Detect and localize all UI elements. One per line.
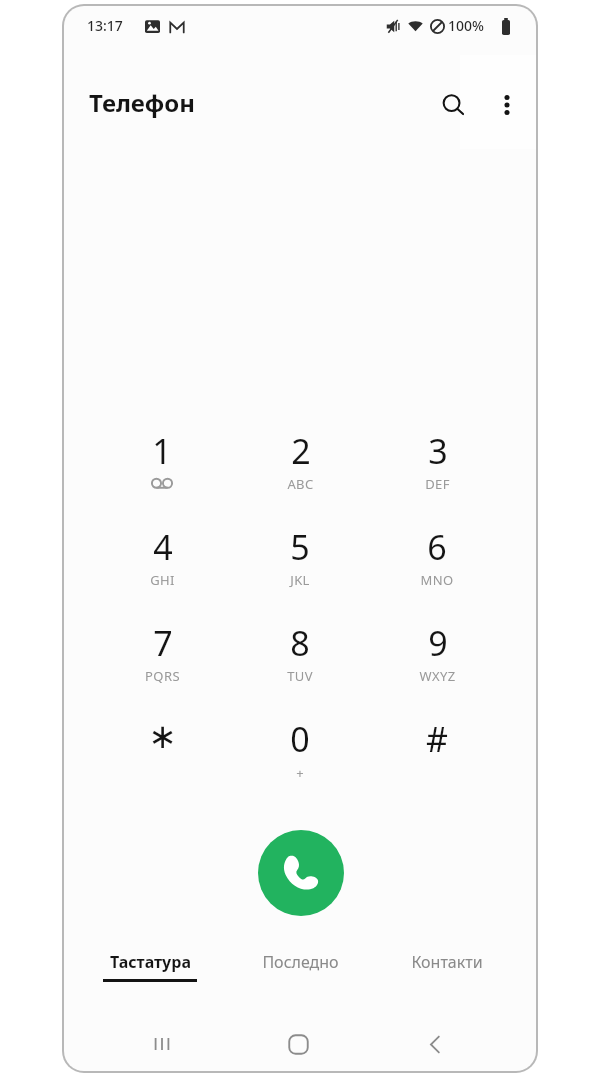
- staticText: #: [426, 716, 448, 762]
- button[interactable]: 6: [393, 524, 481, 612]
- staticText: PQRS: [145, 667, 180, 685]
- button[interactable]: #: [393, 716, 481, 804]
- button[interactable]: 5: [256, 524, 344, 612]
- button[interactable]: Search: [427, 79, 479, 131]
- staticText: TUV: [287, 667, 313, 685]
- staticText: GHI: [150, 571, 175, 589]
- staticText: 1: [152, 428, 172, 474]
- button[interactable]: 2: [256, 428, 344, 516]
- staticText: +: [296, 764, 304, 782]
- button[interactable]: More options: [481, 79, 533, 131]
- staticText: 2: [291, 428, 311, 474]
- staticText: 4: [153, 524, 173, 570]
- staticText: 7: [153, 620, 173, 666]
- staticText: 3: [428, 428, 448, 474]
- button[interactable]: Последно: [226, 951, 374, 1007]
- button[interactable]: 7: [118, 620, 206, 708]
- staticText: 100%: [448, 16, 484, 35]
- staticText: 5: [290, 524, 310, 570]
- staticText: 6: [427, 524, 447, 570]
- staticText: 8: [290, 620, 310, 666]
- staticText: Последно: [262, 951, 339, 973]
- staticText: Телефон: [89, 86, 195, 119]
- button[interactable]: Home: [272, 1018, 324, 1070]
- button[interactable]: 3: [393, 428, 481, 516]
- button[interactable]: 9: [393, 620, 481, 708]
- button[interactable]: Recents: [136, 1018, 188, 1070]
- staticText: Тастатура: [110, 951, 191, 973]
- staticText: ∗: [148, 716, 177, 756]
- staticText: 9: [428, 620, 448, 666]
- staticText: 0: [290, 716, 310, 762]
- staticText: Контакти: [411, 951, 483, 973]
- button[interactable]: 8: [256, 620, 344, 708]
- staticText: MNO: [420, 571, 454, 589]
- button[interactable]: 0: [256, 716, 344, 804]
- button[interactable]: 1: [118, 428, 206, 516]
- button[interactable]: Back: [409, 1018, 461, 1070]
- button[interactable]: ∗: [118, 716, 206, 804]
- button[interactable]: Контакти: [373, 951, 521, 1007]
- staticText: 13:17: [87, 16, 123, 35]
- staticText: ABC: [287, 475, 314, 493]
- staticText: WXYZ: [419, 667, 456, 685]
- staticText: JKL: [290, 571, 310, 589]
- button[interactable]: 4: [118, 524, 206, 612]
- button[interactable]: Тастатура: [76, 951, 224, 1007]
- staticText: DEF: [425, 475, 450, 493]
- button[interactable]: Call: [258, 830, 344, 916]
